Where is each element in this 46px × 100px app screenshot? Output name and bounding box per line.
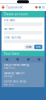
staticText: Teamwork: [6, 5, 23, 9]
button[interactable]: Next: [34, 45, 42, 49]
staticText: Next: [36, 45, 41, 48]
staticText: Marketing handoff: [4, 72, 25, 75]
staticText: Email address: [4, 36, 21, 39]
staticText: Your team: [4, 52, 20, 55]
button[interactable]: Back: [25, 45, 33, 49]
staticText: Back: [26, 45, 31, 48]
button[interactable]: Design review meeting: [2, 62, 44, 71]
button[interactable]: Messages: [39, 6, 41, 8]
button[interactable]: People: [12, 56, 23, 62]
button[interactable]: Chart: [23, 56, 34, 62]
button[interactable]: Grid: [2, 56, 12, 62]
button[interactable]: Marketing handoff: [2, 71, 44, 79]
staticText: Sprint retro notes: [4, 80, 26, 83]
button[interactable]: Home: [1, 5, 5, 9]
staticText: Last name: [4, 27, 14, 30]
staticText: Yesterday: [4, 75, 13, 78]
button[interactable]: Sprint retro notes: [2, 79, 44, 87]
button[interactable]: Calendar: [34, 56, 44, 62]
staticText: Create account: [4, 12, 28, 16]
staticText: First name: [4, 19, 15, 22]
staticText: Today 10:30: [4, 67, 15, 70]
staticText: Mon 14:00: [4, 83, 14, 86]
button[interactable]: Alerts: [35, 6, 38, 8]
button[interactable]: Account: [42, 6, 45, 9]
staticText: Design review meeting: [4, 63, 30, 67]
